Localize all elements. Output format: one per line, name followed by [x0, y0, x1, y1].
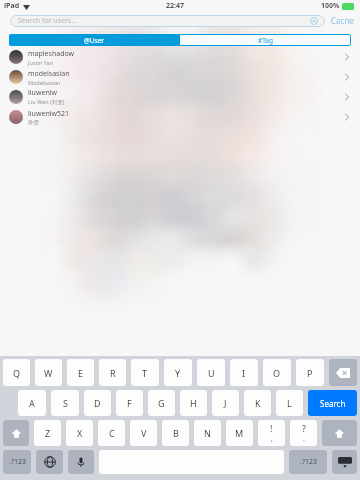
staticText: H	[190, 397, 197, 409]
staticText: T	[142, 367, 148, 379]
staticText: V	[141, 427, 147, 439]
button[interactable]: W	[35, 359, 62, 386]
button[interactable]: Search	[308, 390, 357, 416]
staticText: L	[287, 397, 292, 409]
staticText: Search	[320, 398, 346, 409]
staticText: W	[44, 367, 53, 379]
staticText: 100%	[321, 1, 340, 11]
staticText: C	[109, 427, 115, 439]
staticText: K	[255, 397, 261, 409]
staticText: .?123	[300, 457, 317, 467]
button[interactable]: V	[130, 420, 157, 446]
staticText: Z	[45, 427, 51, 439]
button[interactable]: Shift	[322, 420, 357, 446]
staticText: 孙雯	[28, 119, 39, 126]
button[interactable]: Shift	[3, 420, 29, 446]
button[interactable]: P	[296, 359, 324, 386]
staticText: U	[208, 367, 215, 379]
button[interactable]: B	[162, 420, 189, 446]
button[interactable]: D	[84, 390, 111, 416]
button[interactable]: N	[194, 420, 221, 446]
button[interactable]: Hide keyboard	[332, 450, 357, 474]
staticText: !	[270, 422, 273, 434]
staticText: E	[78, 367, 84, 379]
button[interactable]: Q	[3, 359, 30, 386]
staticText: Liu Wen (刘雯)	[28, 98, 65, 106]
staticText: P	[307, 367, 313, 379]
staticText: .	[303, 434, 305, 444]
staticText: B	[173, 427, 179, 439]
staticText: Q	[13, 367, 21, 379]
button[interactable]: Search for users...	[10, 15, 325, 27]
staticText: Search for users...	[18, 16, 77, 26]
staticText: X	[77, 427, 83, 439]
staticText: A	[29, 397, 35, 409]
button[interactable]: E	[67, 359, 94, 386]
staticText: G	[158, 397, 165, 409]
button[interactable]: Z	[34, 420, 61, 446]
staticText: #Tag	[258, 36, 273, 45]
button[interactable]: T	[131, 359, 159, 386]
staticText: mapleshadow	[28, 49, 75, 59]
button[interactable]: !	[258, 420, 285, 446]
button[interactable]: Cacnel	[325, 15, 360, 27]
button[interactable]: K	[244, 390, 271, 416]
button[interactable]: X	[66, 420, 93, 446]
staticText: J	[224, 397, 227, 409]
button[interactable]: #Tag	[180, 34, 351, 46]
button[interactable]: Numbers	[3, 450, 31, 474]
button[interactable]: F	[116, 390, 143, 416]
staticText: ,	[271, 434, 273, 444]
button[interactable]: Backspace	[329, 359, 357, 386]
staticText: Modelsasian	[28, 79, 61, 86]
button[interactable]: Dictation	[68, 450, 94, 474]
button[interactable]: G	[148, 390, 175, 416]
staticText: R	[110, 367, 116, 379]
staticText: O	[273, 367, 281, 379]
button[interactable]: I	[230, 359, 258, 386]
button[interactable]: mapleshadow	[0, 47, 360, 67]
staticText: modelsasian	[28, 69, 70, 79]
staticText: liuwenlw521	[28, 109, 70, 119]
button[interactable]: U	[197, 359, 225, 386]
button[interactable]: C	[98, 420, 125, 446]
staticText: M	[235, 427, 244, 439]
staticText: iPad	[4, 1, 20, 11]
staticText: N	[204, 427, 211, 439]
button[interactable]: liuwenlw521	[0, 107, 360, 127]
staticText: ?	[302, 422, 306, 434]
button[interactable]: @User	[9, 34, 180, 46]
button[interactable]: J	[212, 390, 239, 416]
button[interactable]: O	[263, 359, 291, 386]
staticText: Cacnel	[331, 15, 354, 27]
staticText: .?123	[9, 457, 26, 467]
staticText: I	[242, 367, 246, 379]
button[interactable]: M	[226, 420, 253, 446]
staticText: 22:47	[166, 1, 184, 11]
button[interactable]: H	[180, 390, 207, 416]
button[interactable]: R	[99, 359, 126, 386]
staticText: F	[127, 397, 132, 409]
button[interactable]: ?	[290, 420, 317, 446]
button[interactable]: liuwenlw	[0, 87, 360, 107]
button[interactable]: modelsasian	[0, 67, 360, 87]
staticText: liuwenlw	[28, 88, 58, 98]
button[interactable]: S	[51, 390, 79, 416]
button[interactable]: Change keyboard	[36, 450, 63, 474]
button[interactable]: Numbers	[289, 450, 327, 474]
button[interactable]: A	[18, 390, 46, 416]
staticText: Justin Yan	[28, 59, 54, 66]
staticText: Y	[175, 367, 181, 379]
staticText: @User	[84, 36, 105, 45]
staticText: D	[94, 397, 101, 409]
staticText: S	[63, 397, 68, 409]
button[interactable]: Y	[164, 359, 192, 386]
button[interactable]: L	[276, 390, 303, 416]
